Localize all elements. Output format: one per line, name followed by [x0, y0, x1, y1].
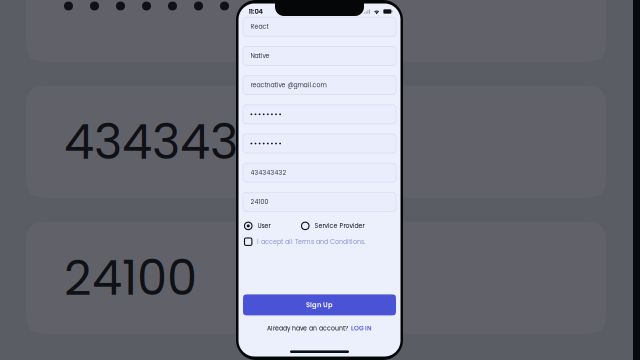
staticText: Native [250, 52, 269, 60]
button[interactable]: Sign Up [243, 294, 396, 315]
button[interactable]: 434343432 [243, 163, 396, 182]
staticText: LOG IN [351, 324, 372, 333]
staticText: React [250, 22, 268, 31]
staticText: Sign Up [306, 300, 333, 309]
staticText: User [257, 222, 270, 230]
button[interactable]: I accept all Terms and Conditions. [244, 237, 365, 247]
staticText: 24100 [250, 198, 268, 206]
staticText: 11:04 [248, 7, 262, 16]
button[interactable]: User [244, 221, 270, 231]
staticText: I accept all Terms and Conditions. [257, 237, 365, 246]
staticText: reactnative @gmail.com [250, 81, 326, 89]
button[interactable]: 24100 [243, 192, 396, 211]
staticText: Service Provider [314, 222, 364, 230]
staticText: 434343432 [250, 168, 286, 177]
button[interactable]: Service Provider [301, 221, 364, 231]
button[interactable]: React [243, 17, 396, 36]
staticText: Provider [378, 358, 562, 360]
button[interactable]: Already have an account? [267, 323, 372, 333]
staticText: 24100 [64, 244, 197, 312]
button[interactable]: Native [243, 46, 396, 65]
button[interactable]: reactnative @gmail.com [243, 76, 396, 95]
button[interactable] [243, 134, 396, 153]
staticText: 434343432 [64, 108, 324, 176]
button[interactable] [243, 105, 396, 124]
staticText: Already have an account? [267, 324, 348, 333]
